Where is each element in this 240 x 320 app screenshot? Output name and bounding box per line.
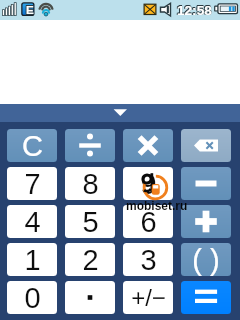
- staticText: 2: [82, 244, 99, 276]
- button[interactable]: Decimal point: [65, 281, 115, 314]
- staticText: E: [26, 2, 34, 15]
- button[interactable]: Minus: [181, 167, 231, 200]
- staticText: 1: [24, 244, 41, 276]
- button[interactable]: Clear: [7, 129, 57, 162]
- button[interactable]: Plus: [181, 205, 231, 238]
- staticText: 7: [24, 168, 41, 200]
- button[interactable]: +/−: [123, 281, 173, 314]
- staticText: 8: [82, 168, 99, 200]
- staticText: 0: [24, 282, 41, 314]
- button[interactable]: Parentheses: [181, 243, 231, 276]
- staticText: 5: [82, 206, 99, 238]
- button[interactable]: Backspace: [181, 129, 231, 162]
- staticText: 12:58: [177, 3, 212, 18]
- staticText: 12:58: [177, 3, 212, 18]
- staticText: 12:58: [177, 3, 212, 18]
- staticText: 3: [140, 244, 157, 276]
- button[interactable]: 4: [7, 205, 57, 238]
- button[interactable]: Divide: [65, 129, 115, 162]
- staticText: +/−: [131, 284, 166, 311]
- staticText: E: [26, 4, 34, 17]
- button[interactable]: 8: [65, 167, 115, 200]
- button[interactable]: 7: [7, 167, 57, 200]
- button[interactable]: 9: [123, 167, 173, 200]
- button[interactable]: 5: [65, 205, 115, 238]
- button[interactable]: 6: [123, 205, 173, 238]
- staticText: E: [26, 3, 34, 16]
- button[interactable]: Multiply: [123, 129, 173, 162]
- staticText: 12:58: [177, 2, 212, 17]
- staticText: 12:58: [176, 3, 211, 18]
- staticText: 6: [140, 206, 157, 238]
- staticText: C: [22, 130, 43, 162]
- staticText: E: [25, 2, 33, 15]
- staticText: ( ): [192, 244, 220, 276]
- button[interactable]: 1: [7, 243, 57, 276]
- staticText: E: [26, 4, 34, 17]
- staticText: 12:58: [177, 3, 212, 18]
- button[interactable]: 0: [7, 281, 57, 314]
- staticText: E: [26, 3, 34, 16]
- staticText: 9: [140, 168, 157, 200]
- staticText: 12:58: [176, 3, 211, 18]
- button[interactable]: 3: [123, 243, 173, 276]
- staticText: 12:58: [177, 2, 212, 17]
- staticText: mobiset.ru: [126, 199, 188, 212]
- staticText: 4: [24, 206, 41, 238]
- staticText: E: [25, 4, 33, 17]
- button[interactable]: 2: [65, 243, 115, 276]
- staticText: E: [25, 3, 33, 16]
- button[interactable]: Equals: [181, 281, 231, 314]
- staticText: 12:58: [176, 2, 211, 17]
- staticText: E: [26, 2, 34, 15]
